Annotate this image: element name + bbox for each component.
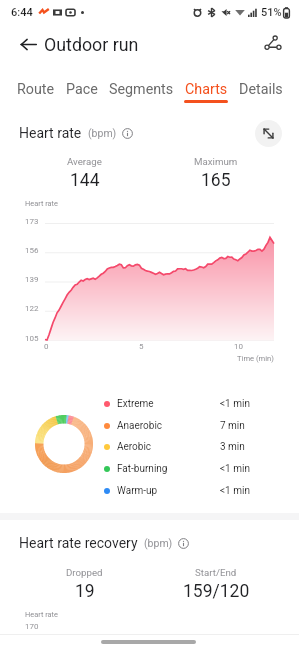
- button[interactable]: Segments: [109, 76, 174, 100]
- staticText: 165: [201, 170, 231, 191]
- staticText: Anaerobic: [117, 420, 163, 432]
- staticText: 7 min: [220, 420, 245, 432]
- button[interactable]: Aerobic: [104, 437, 262, 457]
- staticText: 51%: [261, 6, 282, 19]
- staticText: Heart rate: [25, 610, 58, 619]
- staticText: 3 min: [220, 441, 245, 453]
- button[interactable]: Pace: [66, 76, 98, 100]
- button[interactable]: Share: [253, 24, 293, 64]
- staticText: 159/120: [183, 581, 250, 602]
- staticText: Heart rate: [25, 199, 58, 208]
- button[interactable]: Fat-burning: [104, 459, 262, 479]
- staticText: 19: [75, 581, 95, 602]
- staticText: 10: [234, 342, 243, 351]
- staticText: Warm-up: [117, 485, 158, 497]
- staticText: Aerobic: [117, 441, 152, 453]
- staticText: 0: [44, 342, 49, 351]
- staticText: <1 min: [220, 485, 250, 497]
- staticText: Extreme: [117, 398, 154, 410]
- staticText: Dropped: [66, 567, 103, 578]
- button[interactable]: Anaerobic: [104, 416, 262, 436]
- staticText: 105: [25, 334, 39, 343]
- staticText: <1 min: [220, 463, 250, 475]
- button[interactable]: Back: [8, 24, 48, 64]
- staticText: 170: [25, 622, 39, 631]
- staticText: Route: [17, 81, 55, 98]
- button[interactable]: Warm-up: [104, 481, 262, 501]
- staticText: 5: [139, 342, 144, 351]
- staticText: Details: [239, 81, 283, 98]
- staticText: 6:44: [11, 6, 33, 19]
- staticText: 122: [25, 304, 39, 313]
- staticText: 144: [70, 170, 100, 191]
- staticText: Charts: [185, 81, 228, 98]
- staticText: (bpm): [144, 537, 173, 549]
- staticText: Time (min): [237, 354, 274, 363]
- staticText: 156: [25, 246, 39, 255]
- staticText: Average: [67, 156, 102, 167]
- staticText: Maximum: [194, 156, 238, 167]
- button[interactable]: Expand chart: [255, 120, 282, 147]
- button[interactable]: Route: [17, 76, 55, 100]
- staticText: Outdoor run: [44, 34, 139, 55]
- staticText: Segments: [109, 81, 174, 98]
- staticText: (bpm): [88, 127, 117, 139]
- button[interactable]: Details: [239, 76, 283, 100]
- staticText: Heart rate: [19, 125, 82, 141]
- staticText: Fat-burning: [117, 463, 168, 475]
- button[interactable]: Charts: [184, 76, 228, 103]
- staticText: Pace: [66, 81, 98, 98]
- staticText: Start/End: [195, 567, 237, 578]
- button[interactable]: Extreme: [104, 394, 262, 414]
- staticText: 139: [25, 275, 39, 284]
- staticText: 173: [25, 217, 39, 226]
- staticText: <1 min: [220, 398, 250, 410]
- staticText: Heart rate recovery: [19, 535, 138, 551]
